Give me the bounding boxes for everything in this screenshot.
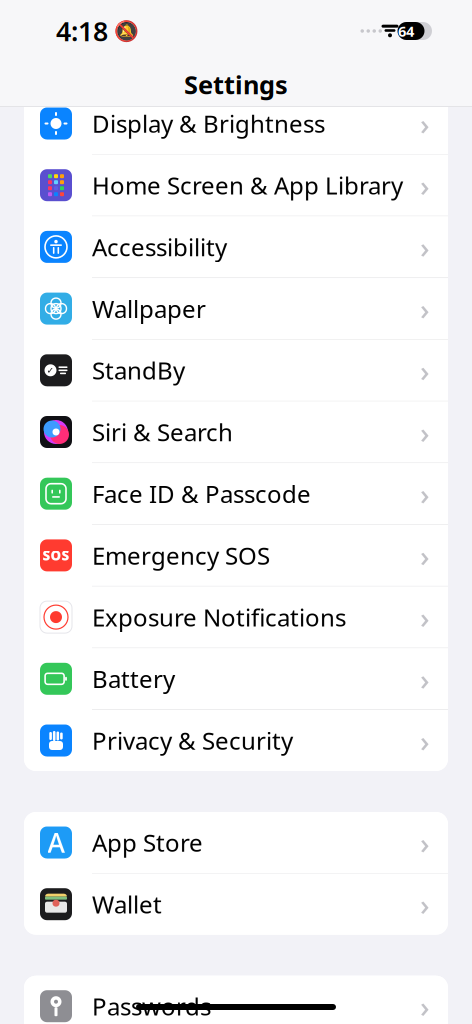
staticText: › xyxy=(420,536,430,575)
staticText: › xyxy=(420,659,430,698)
staticText: Battery xyxy=(92,663,175,695)
staticText: Face ID & Passcode xyxy=(92,478,311,510)
button[interactable]: Home Screen & App Library xyxy=(24,155,448,216)
staticText: 4:18 xyxy=(56,13,108,49)
staticText: SOS xyxy=(42,546,69,564)
button[interactable]: Face ID & Passcode xyxy=(24,463,448,525)
staticText: › xyxy=(420,721,430,760)
staticText: ✓ xyxy=(46,365,54,376)
staticText: A xyxy=(47,825,64,860)
staticText: StandBy xyxy=(92,354,185,386)
staticText: › xyxy=(420,351,430,390)
button[interactable]: A xyxy=(24,812,448,874)
staticText: Privacy & Security xyxy=(92,725,293,756)
staticText: 64 xyxy=(398,21,414,41)
button[interactable]: Wallet xyxy=(24,874,448,935)
button[interactable]: Siri & Search xyxy=(24,401,448,463)
staticText: › xyxy=(420,227,430,266)
staticText: › xyxy=(420,166,430,205)
staticText: › xyxy=(420,412,430,451)
staticText: Wallpaper xyxy=(92,293,206,325)
button[interactable]: Privacy & Security xyxy=(24,710,448,771)
staticText: Wallet xyxy=(92,888,162,920)
staticText: › xyxy=(420,289,430,328)
staticText: › xyxy=(420,474,430,513)
button[interactable]: Passwords xyxy=(24,976,448,1024)
button[interactable]: Exposure Notifications xyxy=(24,587,448,648)
staticText: 🔕 xyxy=(114,20,139,42)
staticText: Passwords xyxy=(92,990,211,1022)
staticText: Settings xyxy=(184,68,288,101)
staticText: › xyxy=(420,104,430,143)
staticText: › xyxy=(420,885,430,924)
staticText: App Store xyxy=(92,827,203,858)
staticText: Display & Brightness xyxy=(92,108,325,139)
staticText: Home Screen & App Library xyxy=(92,169,403,201)
staticText: Siri & Search xyxy=(92,416,233,448)
staticText: Exposure Notifications xyxy=(92,601,346,633)
button[interactable]: SOS xyxy=(24,525,448,587)
button[interactable]: Accessibility xyxy=(24,216,448,278)
button[interactable]: ✓ xyxy=(24,340,448,401)
staticText: › xyxy=(420,987,430,1024)
staticText: › xyxy=(420,823,430,862)
button[interactable]: Display & Brightness xyxy=(24,93,448,155)
staticText: Emergency SOS xyxy=(92,539,270,571)
staticText: › xyxy=(420,598,430,637)
button[interactable]: Wallpaper xyxy=(24,278,448,340)
button[interactable]: Battery xyxy=(24,648,448,710)
staticText: Accessibility xyxy=(92,231,227,263)
